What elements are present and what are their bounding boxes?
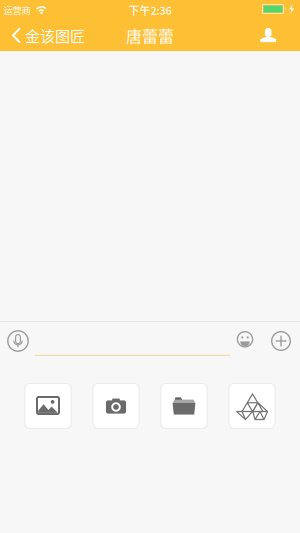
button[interactable]: 更多 — [254, 331, 300, 351]
staticText: 运营商 — [3, 3, 30, 17]
staticText: 下午2:36 — [128, 2, 171, 18]
button[interactable]: 相册 — [24, 383, 71, 429]
button[interactable]: 联系人资料 — [260, 27, 300, 43]
staticText: 唐蕾蕾 — [126, 24, 174, 47]
button[interactable]: 白板 — [228, 383, 275, 429]
button[interactable]: 表情 — [236, 332, 254, 350]
button[interactable]: 拍摄 — [92, 383, 139, 429]
button[interactable]: 金该图匠 — [0, 25, 85, 46]
staticText: 金该图匠 — [25, 25, 85, 46]
button[interactable]: 文件 — [160, 383, 207, 429]
button[interactable]: 语音输入 — [0, 330, 29, 352]
